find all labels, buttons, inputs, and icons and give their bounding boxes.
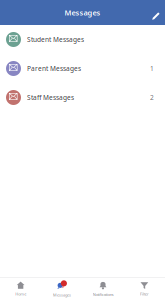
staticText: Staff Messages [27,93,74,102]
staticText: Messages [64,7,100,18]
button[interactable]: Messages [41,277,82,300]
staticText: Student Messages [27,35,84,44]
staticText: Home [15,291,26,297]
button[interactable]: Filter [124,277,165,300]
button[interactable]: Notifications [82,277,124,300]
staticText: 2 [150,93,154,102]
button[interactable]: Staff Messages [0,83,165,112]
staticText: Filter [140,291,149,297]
staticText: Notifications [93,292,114,297]
staticText: 1 [150,64,154,73]
button[interactable]: Parent Messages [0,54,165,83]
staticText: Messages [53,292,71,298]
staticText: Parent Messages [27,64,81,73]
button[interactable]: Compose [152,4,165,20]
button[interactable]: Home [0,277,41,300]
button[interactable]: Student Messages [0,25,165,54]
